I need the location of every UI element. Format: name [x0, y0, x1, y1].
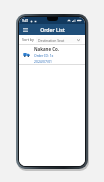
staticText: Destination Seat: [38, 38, 77, 43]
staticText: 2024/07/01: [34, 59, 53, 64]
staticText: 9:41: [22, 19, 29, 23]
staticText: Order ID: 1x: [34, 53, 54, 58]
button[interactable]: Destination Seat: [36, 37, 82, 43]
button[interactable]: Open navigation menu: [21, 26, 29, 34]
staticText: Order List: [40, 26, 65, 33]
staticText: Nakane Co.: [34, 46, 59, 52]
staticText: Sort by: [22, 37, 34, 42]
button[interactable]: Nakane Co.: [19, 45, 85, 64]
